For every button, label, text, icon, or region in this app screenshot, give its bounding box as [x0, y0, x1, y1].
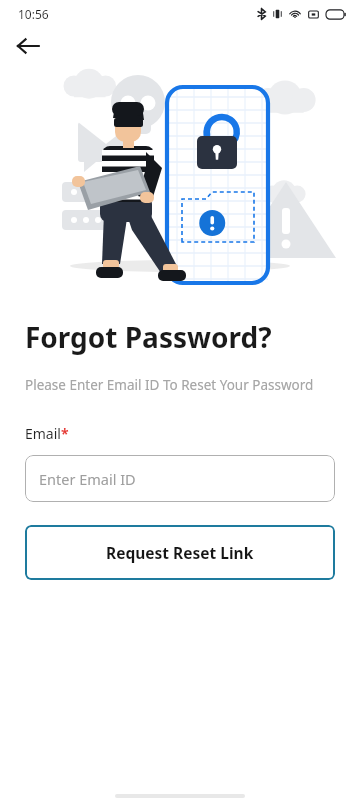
staticText: Please Enter Email ID To Reset Your Pass… [25, 376, 314, 394]
staticText: Forgot Password? [25, 318, 272, 356]
button[interactable]: Enter Email ID [25, 455, 335, 502]
staticText: Enter Email ID [39, 469, 136, 489]
staticText: Email* [25, 424, 69, 443]
staticText: Request Reset Link [106, 542, 254, 563]
button[interactable]: Request Reset Link [25, 525, 335, 580]
button[interactable]: Back [8, 28, 48, 64]
staticText: 10:56 [18, 6, 49, 22]
